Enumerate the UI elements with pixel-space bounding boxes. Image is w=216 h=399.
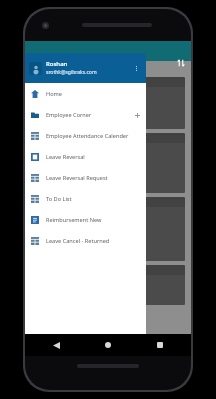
button[interactable]: [31, 197, 185, 261]
button[interactable]: Home: [25, 83, 146, 104]
button[interactable]: Employee Corner: [25, 104, 146, 125]
button[interactable]: Employee Attendance Calender: [25, 125, 146, 146]
button[interactable]: [31, 265, 185, 305]
staticText: Home: [46, 90, 142, 98]
button[interactable]: Leave Reversal Request: [25, 167, 146, 188]
button[interactable]: Sort: [173, 55, 189, 71]
staticText: Employee Attendance Calender: [46, 132, 142, 140]
button[interactable]: Reimbursement New: [25, 209, 146, 230]
button[interactable]: To Do List: [25, 188, 146, 209]
staticText: Leave Reversal: [46, 153, 142, 161]
staticText: To Do List: [46, 195, 142, 203]
button[interactable]: [31, 133, 185, 193]
button[interactable]: Navigate up: [27, 55, 43, 71]
staticText: Roshan: [46, 60, 68, 68]
staticText: Powered by AspreX: [47, 336, 95, 343]
button[interactable]: Leave Cancel - Returned: [25, 230, 146, 251]
staticText: Employee Corner: [46, 111, 132, 119]
staticText: Leave Reversal Request: [46, 174, 142, 182]
button[interactable]: Recent apps: [151, 336, 169, 354]
button[interactable]: Leave Reversal: [25, 146, 146, 167]
staticText: Reimbursement New: [46, 216, 142, 224]
staticText: GI Staffing Services: [44, 58, 114, 68]
button[interactable]: Back: [47, 336, 65, 354]
button[interactable]: [31, 77, 185, 129]
other: Expand: [132, 110, 142, 120]
staticText: srothk@sgibraks.com: [46, 69, 97, 76]
button[interactable]: More options: [130, 62, 142, 74]
staticText: Leave Cancel - Returned: [46, 237, 142, 245]
button[interactable]: Home: [99, 336, 117, 354]
